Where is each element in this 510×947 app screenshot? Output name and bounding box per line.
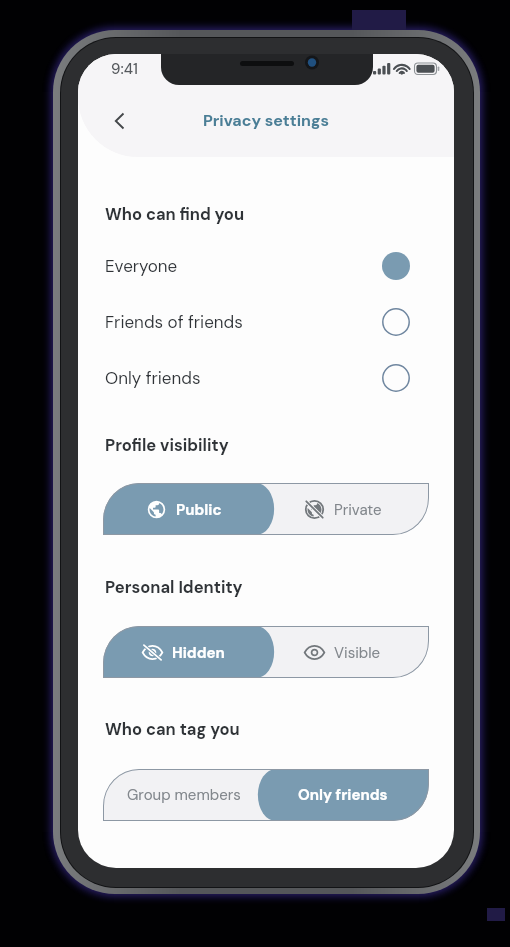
staticText: Privacy settings (203, 110, 330, 131)
staticText: Hidden (172, 643, 225, 663)
button[interactable]: Friends of friends (78, 294, 454, 350)
staticText: 9:41 (111, 59, 138, 79)
staticText: Private (334, 500, 382, 520)
button[interactable]: Everyone (78, 238, 454, 294)
staticText: Only friends (105, 367, 201, 389)
staticText: Only friends (298, 785, 388, 805)
button[interactable]: Private (266, 483, 429, 535)
staticText: Profile visibility (105, 435, 229, 456)
staticText: Public (176, 500, 222, 520)
button[interactable]: Visible (266, 626, 429, 678)
staticText: Visible (334, 643, 381, 663)
button[interactable]: Back (98, 99, 142, 143)
button[interactable]: Hidden (103, 626, 266, 678)
button[interactable]: Public (103, 483, 266, 535)
staticText: Who can tag you (105, 719, 240, 740)
staticText: Who can find you (105, 204, 245, 225)
button[interactable]: Only friends (78, 350, 454, 406)
button[interactable]: Only friends (266, 769, 429, 821)
button[interactable]: Group members (103, 769, 266, 821)
staticText: Group members (127, 785, 241, 805)
staticText: Everyone (105, 255, 178, 277)
staticText: Personal Identity (105, 577, 243, 598)
staticText: Friends of friends (105, 311, 243, 333)
